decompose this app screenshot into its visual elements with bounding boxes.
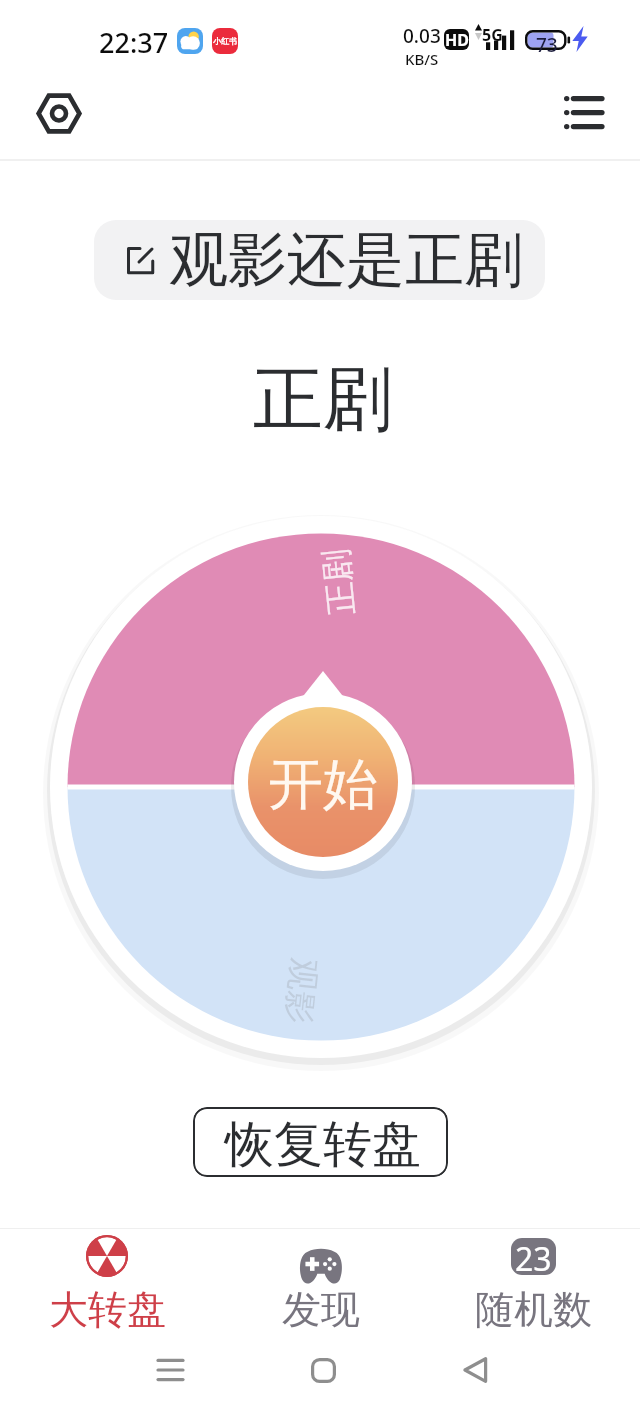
staticText: 正剧 <box>315 547 363 617</box>
button[interactable]: Settings <box>22 81 90 149</box>
button[interactable]: 观影还是正剧 <box>94 220 545 300</box>
staticText: 开始 <box>268 750 378 819</box>
staticText: KB/S <box>405 49 439 69</box>
button[interactable]: 大转盘 <box>0 1229 214 1342</box>
button[interactable]: 恢复转盘 <box>193 1107 448 1177</box>
staticText: 73 <box>536 32 558 52</box>
staticText: 恢复转盘 <box>225 1114 421 1176</box>
staticText: 发现 <box>282 1285 360 1334</box>
staticText: 22:37 <box>99 24 169 61</box>
button[interactable]: List menu <box>550 81 618 149</box>
staticText: HD <box>445 29 469 50</box>
staticText: 正剧 <box>253 356 393 444</box>
button[interactable]: 发现 <box>214 1229 427 1342</box>
staticText: 观影还是正剧 <box>169 223 523 297</box>
staticText: 大转盘 <box>49 1285 166 1334</box>
button[interactable]: 23 <box>427 1229 640 1342</box>
staticText: 0.03 <box>403 23 441 49</box>
staticText: 小红书 <box>213 36 237 46</box>
button[interactable]: Recents <box>140 1347 200 1393</box>
staticText: 观影 <box>277 956 325 1026</box>
staticText: 随机数 <box>475 1285 592 1334</box>
staticText: 23 <box>515 1238 552 1274</box>
button[interactable]: 开始 <box>248 707 398 857</box>
button[interactable]: Back <box>445 1347 505 1393</box>
button[interactable]: Home <box>293 1347 353 1393</box>
staticText: 5G <box>482 24 503 46</box>
